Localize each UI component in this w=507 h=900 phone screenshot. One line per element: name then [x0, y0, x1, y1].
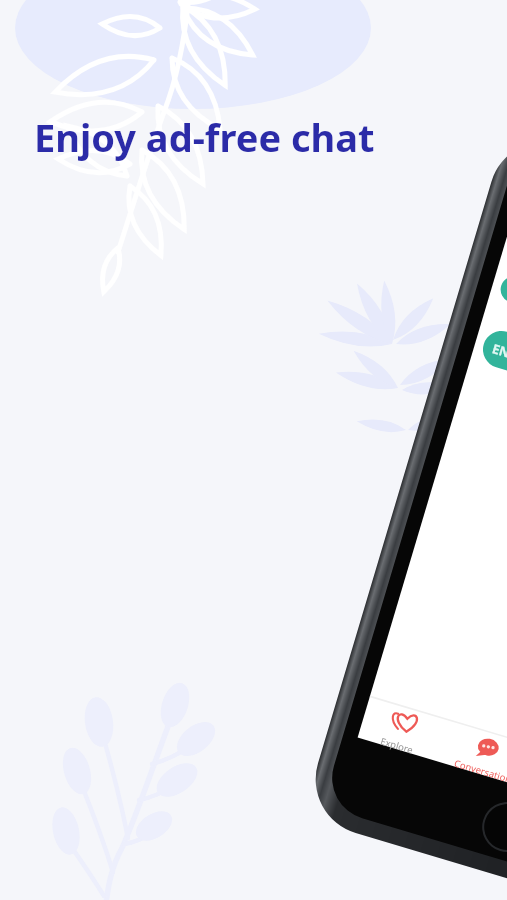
staticText: Enjoy ad-free chat [34, 111, 375, 163]
